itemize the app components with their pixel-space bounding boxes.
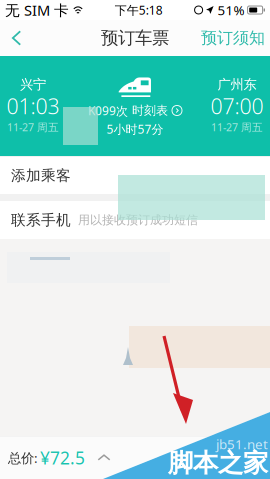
staticText: 兴宁 <box>20 76 46 93</box>
staticText: ¥72.5 <box>40 446 85 469</box>
staticText: 添加乘客 <box>11 166 71 184</box>
staticText: 联系手机 <box>11 211 71 229</box>
staticText: jb51.net <box>216 435 268 453</box>
staticText: 预订须知 <box>201 28 265 48</box>
staticText: 01:03 <box>6 92 59 120</box>
staticText: 用以接收预订成功短信 <box>78 213 198 227</box>
staticText: 预订车票 <box>101 27 169 49</box>
staticText: 5小时57分 <box>106 121 163 137</box>
button[interactable]: K099次 <box>88 104 182 117</box>
staticText: K099次 <box>88 102 128 118</box>
staticText: 11-27 周五 <box>7 120 59 134</box>
staticText: 51% <box>218 1 245 19</box>
staticText: 广州东 <box>217 76 256 93</box>
button[interactable]: 添加乘客 <box>0 157 270 194</box>
staticText: 时刻表 <box>132 103 168 118</box>
staticText: 脚本之家 <box>168 447 268 478</box>
staticText: 11-27 周五 <box>211 120 263 134</box>
staticText: 下午5:18 <box>115 2 163 18</box>
staticText: 总价: <box>8 449 38 467</box>
button[interactable]: 预订须知 <box>201 20 270 56</box>
button[interactable]: 返回 <box>0 20 34 56</box>
button[interactable]: 展开费用明细 <box>85 437 123 479</box>
staticText: 07:00 <box>210 92 263 120</box>
staticText: 无 SIM 卡 <box>5 0 69 20</box>
button[interactable]: 联系手机 <box>0 201 270 239</box>
